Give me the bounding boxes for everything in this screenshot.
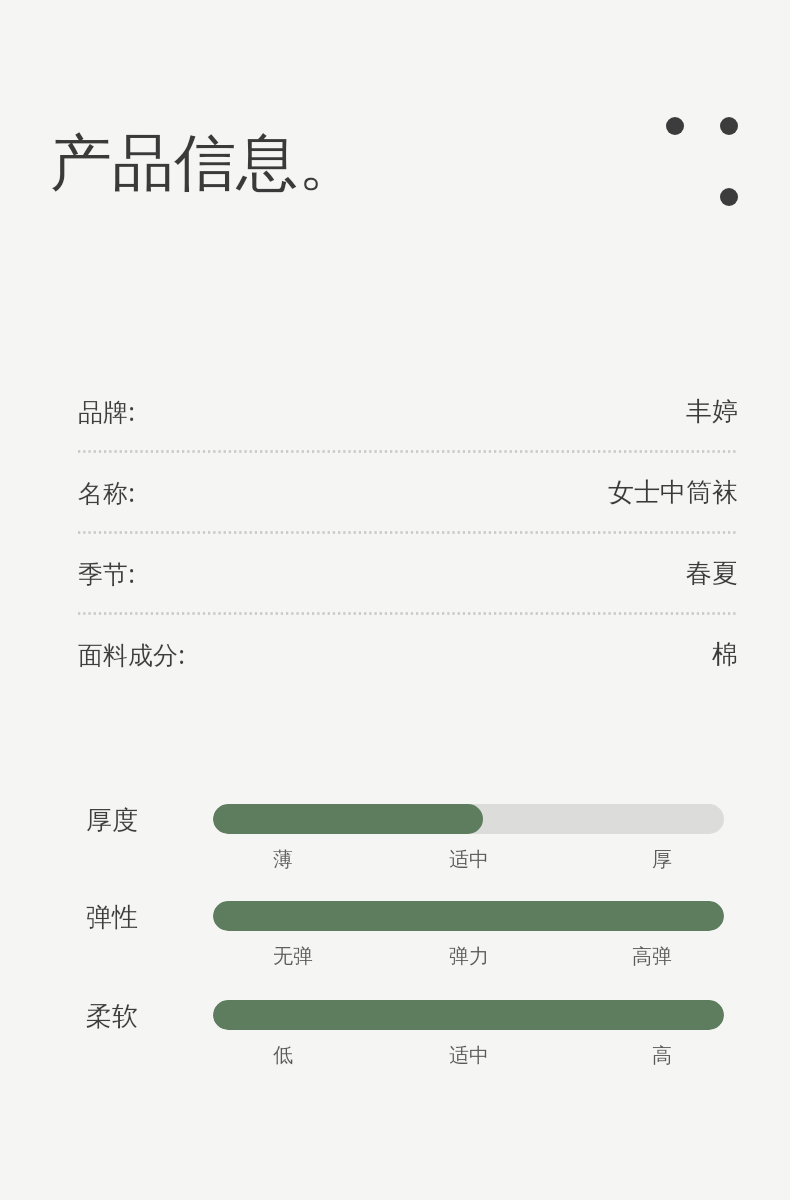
- staticText: 季节:: [78, 556, 136, 590]
- button[interactable]: More options: [655, 106, 755, 218]
- staticText: 适中: [449, 847, 489, 872]
- staticText: 名称:: [78, 475, 136, 509]
- button[interactable]: 品牌:: [78, 372, 738, 450]
- staticText: 低: [273, 1043, 293, 1068]
- button[interactable]: 弹性: [78, 901, 724, 969]
- staticText: 品牌:: [78, 394, 136, 428]
- staticText: 产品信息。: [50, 124, 360, 202]
- staticText: 无弹: [273, 944, 313, 969]
- staticText: 春夏: [686, 557, 738, 590]
- staticText: 女士中筒袜: [608, 476, 738, 509]
- staticText: 弹性: [86, 901, 138, 931]
- staticText: 高弹: [632, 944, 672, 969]
- staticText: 丰婷: [686, 395, 738, 428]
- button[interactable]: 名称:: [78, 453, 738, 531]
- button[interactable]: 柔软: [78, 1000, 724, 1068]
- staticText: 厚度: [86, 804, 138, 834]
- staticText: 高: [652, 1043, 672, 1068]
- staticText: 面料成分:: [78, 637, 186, 671]
- staticText: 厚: [652, 847, 672, 872]
- staticText: 薄: [273, 847, 293, 872]
- button[interactable]: 面料成分:: [78, 615, 738, 693]
- button[interactable]: 季节:: [78, 534, 738, 612]
- button[interactable]: 产品信息。: [50, 124, 360, 202]
- staticText: 柔软: [86, 1000, 138, 1030]
- staticText: 弹力: [449, 944, 489, 969]
- staticText: 棉: [712, 638, 738, 671]
- staticText: 适中: [449, 1043, 489, 1068]
- button[interactable]: 厚度: [78, 804, 724, 872]
